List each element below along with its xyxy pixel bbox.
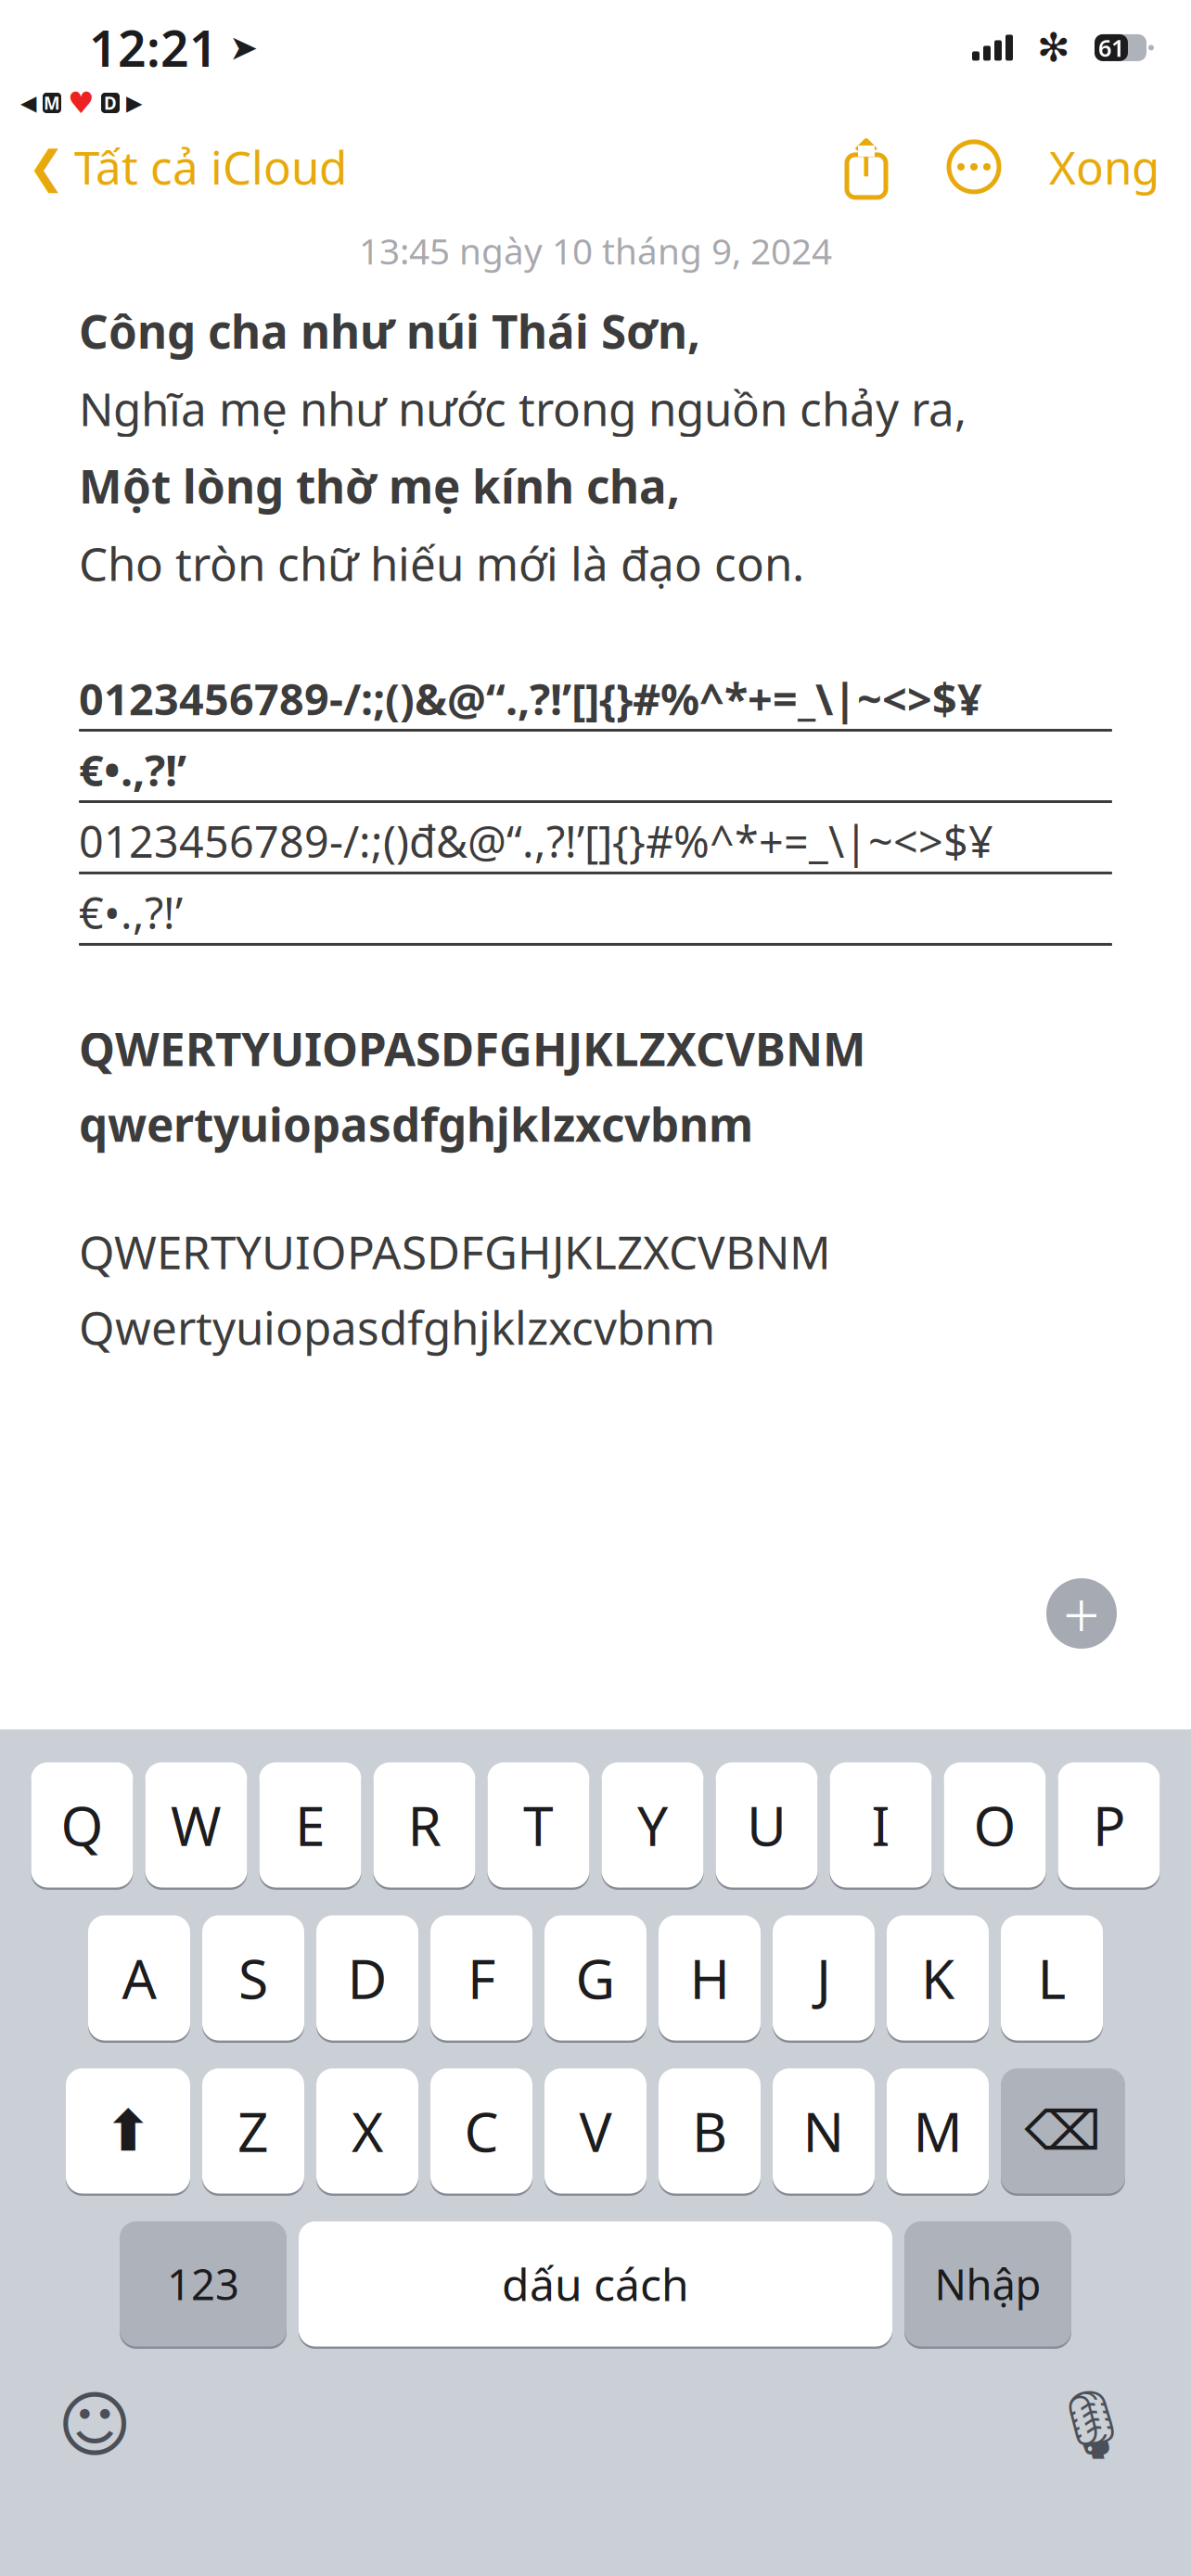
button[interactable]: Thêm: [1046, 1578, 1117, 1649]
button[interactable]: ❮: [0, 127, 347, 206]
staticText: X: [352, 2095, 383, 2167]
button[interactable]: D: [316, 1913, 418, 2043]
staticText: G: [576, 1942, 615, 2014]
staticText: D: [104, 91, 117, 114]
staticText: T: [523, 1789, 554, 1861]
button[interactable]: H: [659, 1913, 761, 2043]
staticText: W: [171, 1789, 222, 1861]
staticText: €•.,?!’: [79, 741, 186, 798]
button[interactable]: U: [716, 1760, 818, 1890]
button[interactable]: X: [316, 2066, 418, 2196]
button[interactable]: S: [202, 1913, 304, 2043]
staticText: S: [238, 1942, 268, 2014]
staticText: Q: [61, 1789, 103, 1861]
button[interactable]: Shift: [66, 2066, 190, 2196]
staticText: dấu cách: [502, 2254, 689, 2313]
button[interactable]: Xóa: [1001, 2066, 1125, 2196]
staticText: ♥: [68, 86, 95, 120]
button[interactable]: Thêm: [947, 140, 1001, 194]
staticText: 🎙: [1049, 2387, 1133, 2463]
button[interactable]: Z: [202, 2066, 304, 2196]
staticText: O: [973, 1789, 1016, 1861]
button[interactable]: B: [659, 2066, 761, 2196]
staticText: E: [295, 1789, 326, 1861]
staticText: ↑: [845, 129, 888, 188]
button[interactable]: V: [544, 2066, 647, 2196]
button[interactable]: Biểu tượng cảm xúc: [0, 2377, 133, 2473]
button[interactable]: 123: [120, 2219, 287, 2349]
staticText: ⬆: [104, 2099, 152, 2163]
button[interactable]: J: [773, 1913, 875, 2043]
staticText: L: [1037, 1942, 1066, 2014]
button[interactable]: Nhập: [904, 2219, 1071, 2349]
staticText: B: [692, 2095, 727, 2167]
button[interactable]: Đọc chính tả: [1049, 2379, 1191, 2470]
staticText: Nghĩa mẹ như nước trong nguồn chảy ra,: [79, 378, 967, 439]
staticText: ✻: [1037, 25, 1070, 70]
staticText: 0123456789-/:;()đ&@“.,?!’[]{}#%^*+=_\|~<…: [79, 812, 993, 870]
staticText: Xong: [1049, 136, 1159, 197]
button[interactable]: A: [88, 1913, 190, 2043]
button[interactable]: G: [544, 1913, 647, 2043]
button[interactable]: Chia sẻ: [841, 134, 891, 199]
button[interactable]: L: [1001, 1913, 1103, 2043]
staticText: M: [44, 91, 60, 114]
staticText: Công cha như núi Thái Sơn,: [79, 300, 700, 361]
staticText: qwertyuiopasdfghjklzxcvbnm: [79, 1094, 753, 1154]
staticText: Y: [637, 1789, 668, 1861]
staticText: A: [122, 1942, 156, 2014]
button[interactable]: Xong: [1049, 127, 1191, 206]
button[interactable]: W: [145, 1760, 247, 1890]
button[interactable]: P: [1058, 1760, 1160, 1890]
button[interactable]: C: [430, 2066, 532, 2196]
staticText: ❮: [28, 142, 65, 192]
staticText: QWERTYUIOPASDFGHJKLZXCVBNM: [79, 1221, 831, 1282]
staticText: +: [1063, 1571, 1100, 1656]
staticText: 13:45 ngày 10 tháng 9, 2024: [359, 227, 832, 274]
button[interactable]: E: [259, 1760, 361, 1890]
staticText: QWERTYUIOPASDFGHJKLZXCVBNM: [79, 1018, 866, 1079]
staticText: Một lòng thờ mẹ kính cha,: [79, 455, 680, 516]
staticText: Nhập: [935, 2256, 1041, 2312]
staticText: P: [1093, 1789, 1125, 1861]
staticText: ⌫: [1025, 2100, 1101, 2162]
staticText: Z: [237, 2095, 269, 2167]
button[interactable]: O: [944, 1760, 1046, 1890]
staticText: Tất cả iCloud: [74, 136, 347, 197]
staticText: ▶: [126, 91, 142, 115]
staticText: D: [347, 1942, 387, 2014]
staticText: 61: [1098, 32, 1124, 63]
staticText: J: [816, 1942, 831, 2014]
staticText: 0123456789-/:;()&@“.,?!’[]{}#%^*+=_\|~<>…: [79, 670, 982, 727]
staticText: €•.,?!’: [79, 884, 183, 941]
staticText: C: [464, 2095, 499, 2167]
staticText: K: [921, 1942, 954, 2014]
staticText: Cho tròn chữ hiếu mới là đạo con.: [79, 533, 804, 593]
button[interactable]: Q: [31, 1760, 133, 1890]
button[interactable]: N: [773, 2066, 875, 2196]
staticText: I: [871, 1789, 890, 1861]
staticText: H: [690, 1942, 730, 2014]
staticText: Qwertyuiopasdfghjklzxcvbnm: [79, 1297, 715, 1358]
staticText: ☺: [58, 2384, 133, 2465]
staticText: 123: [167, 2256, 239, 2312]
staticText: V: [579, 2095, 612, 2167]
staticText: U: [747, 1789, 787, 1861]
staticText: 12:21: [89, 15, 218, 80]
staticText: F: [467, 1942, 495, 2014]
button[interactable]: dấu cách: [299, 2219, 892, 2349]
button[interactable]: M: [887, 2066, 989, 2196]
staticText: ◀: [20, 91, 36, 115]
button[interactable]: K: [887, 1913, 989, 2043]
button[interactable]: I: [830, 1760, 932, 1890]
button[interactable]: R: [373, 1760, 475, 1890]
button[interactable]: F: [430, 1913, 532, 2043]
staticText: ➤: [229, 28, 258, 67]
button[interactable]: Y: [602, 1760, 704, 1890]
staticText: R: [408, 1789, 441, 1861]
button[interactable]: T: [487, 1760, 589, 1890]
staticText: M: [913, 2095, 962, 2167]
staticText: N: [803, 2095, 845, 2167]
